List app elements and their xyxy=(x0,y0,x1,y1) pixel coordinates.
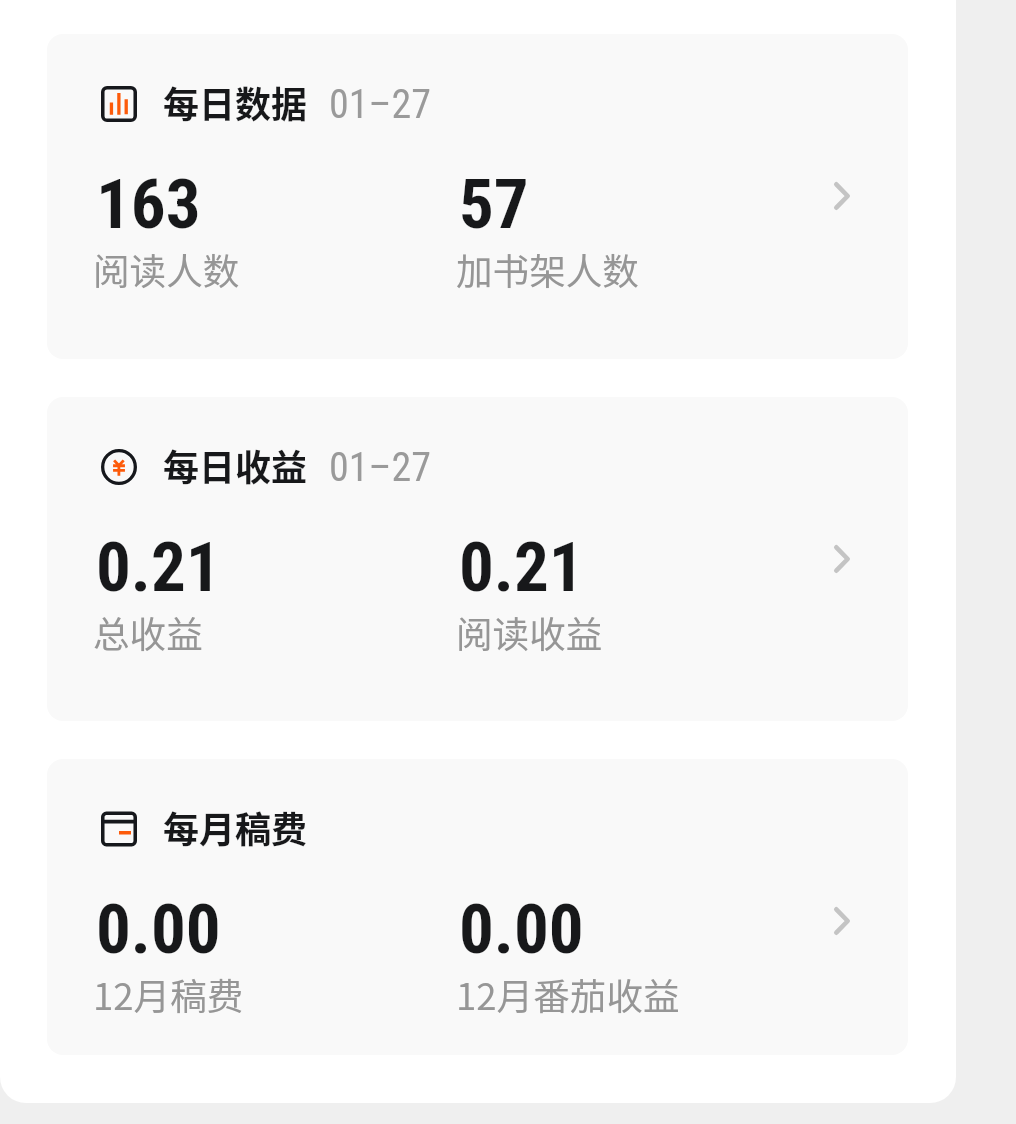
staticText: 12月番茄收益 xyxy=(456,968,680,1021)
button[interactable]: Daily data xyxy=(47,34,908,359)
staticText: 163 xyxy=(96,164,201,245)
other: Daily data xyxy=(101,86,137,122)
button[interactable]: Open details xyxy=(818,529,866,589)
staticText: 每日数据 xyxy=(163,76,308,128)
staticText: 0.00 xyxy=(96,889,221,970)
staticText: 57 xyxy=(459,164,529,245)
button[interactable]: Monthly payment xyxy=(47,759,908,1055)
staticText: 加书架人数 xyxy=(456,243,639,296)
staticText: 每月稿费 xyxy=(163,801,308,853)
staticText: 阅读收益 xyxy=(456,606,603,659)
staticText: 0.21 xyxy=(96,527,221,608)
staticText: 0.00 xyxy=(459,889,584,970)
staticText: 01–27 xyxy=(329,81,431,128)
staticText: 阅读人数 xyxy=(93,243,240,296)
other: Daily income xyxy=(101,449,137,485)
staticText: 01–27 xyxy=(329,444,431,491)
other: Monthly payment xyxy=(101,811,137,847)
staticText: 每日收益 xyxy=(163,439,308,491)
staticText: 总收益 xyxy=(93,606,203,659)
button[interactable]: Open details xyxy=(818,891,866,951)
button[interactable]: Daily income xyxy=(47,397,908,721)
staticText: 0.21 xyxy=(459,527,584,608)
staticText: 12月稿费 xyxy=(93,968,244,1021)
button[interactable]: Open details xyxy=(818,166,866,226)
